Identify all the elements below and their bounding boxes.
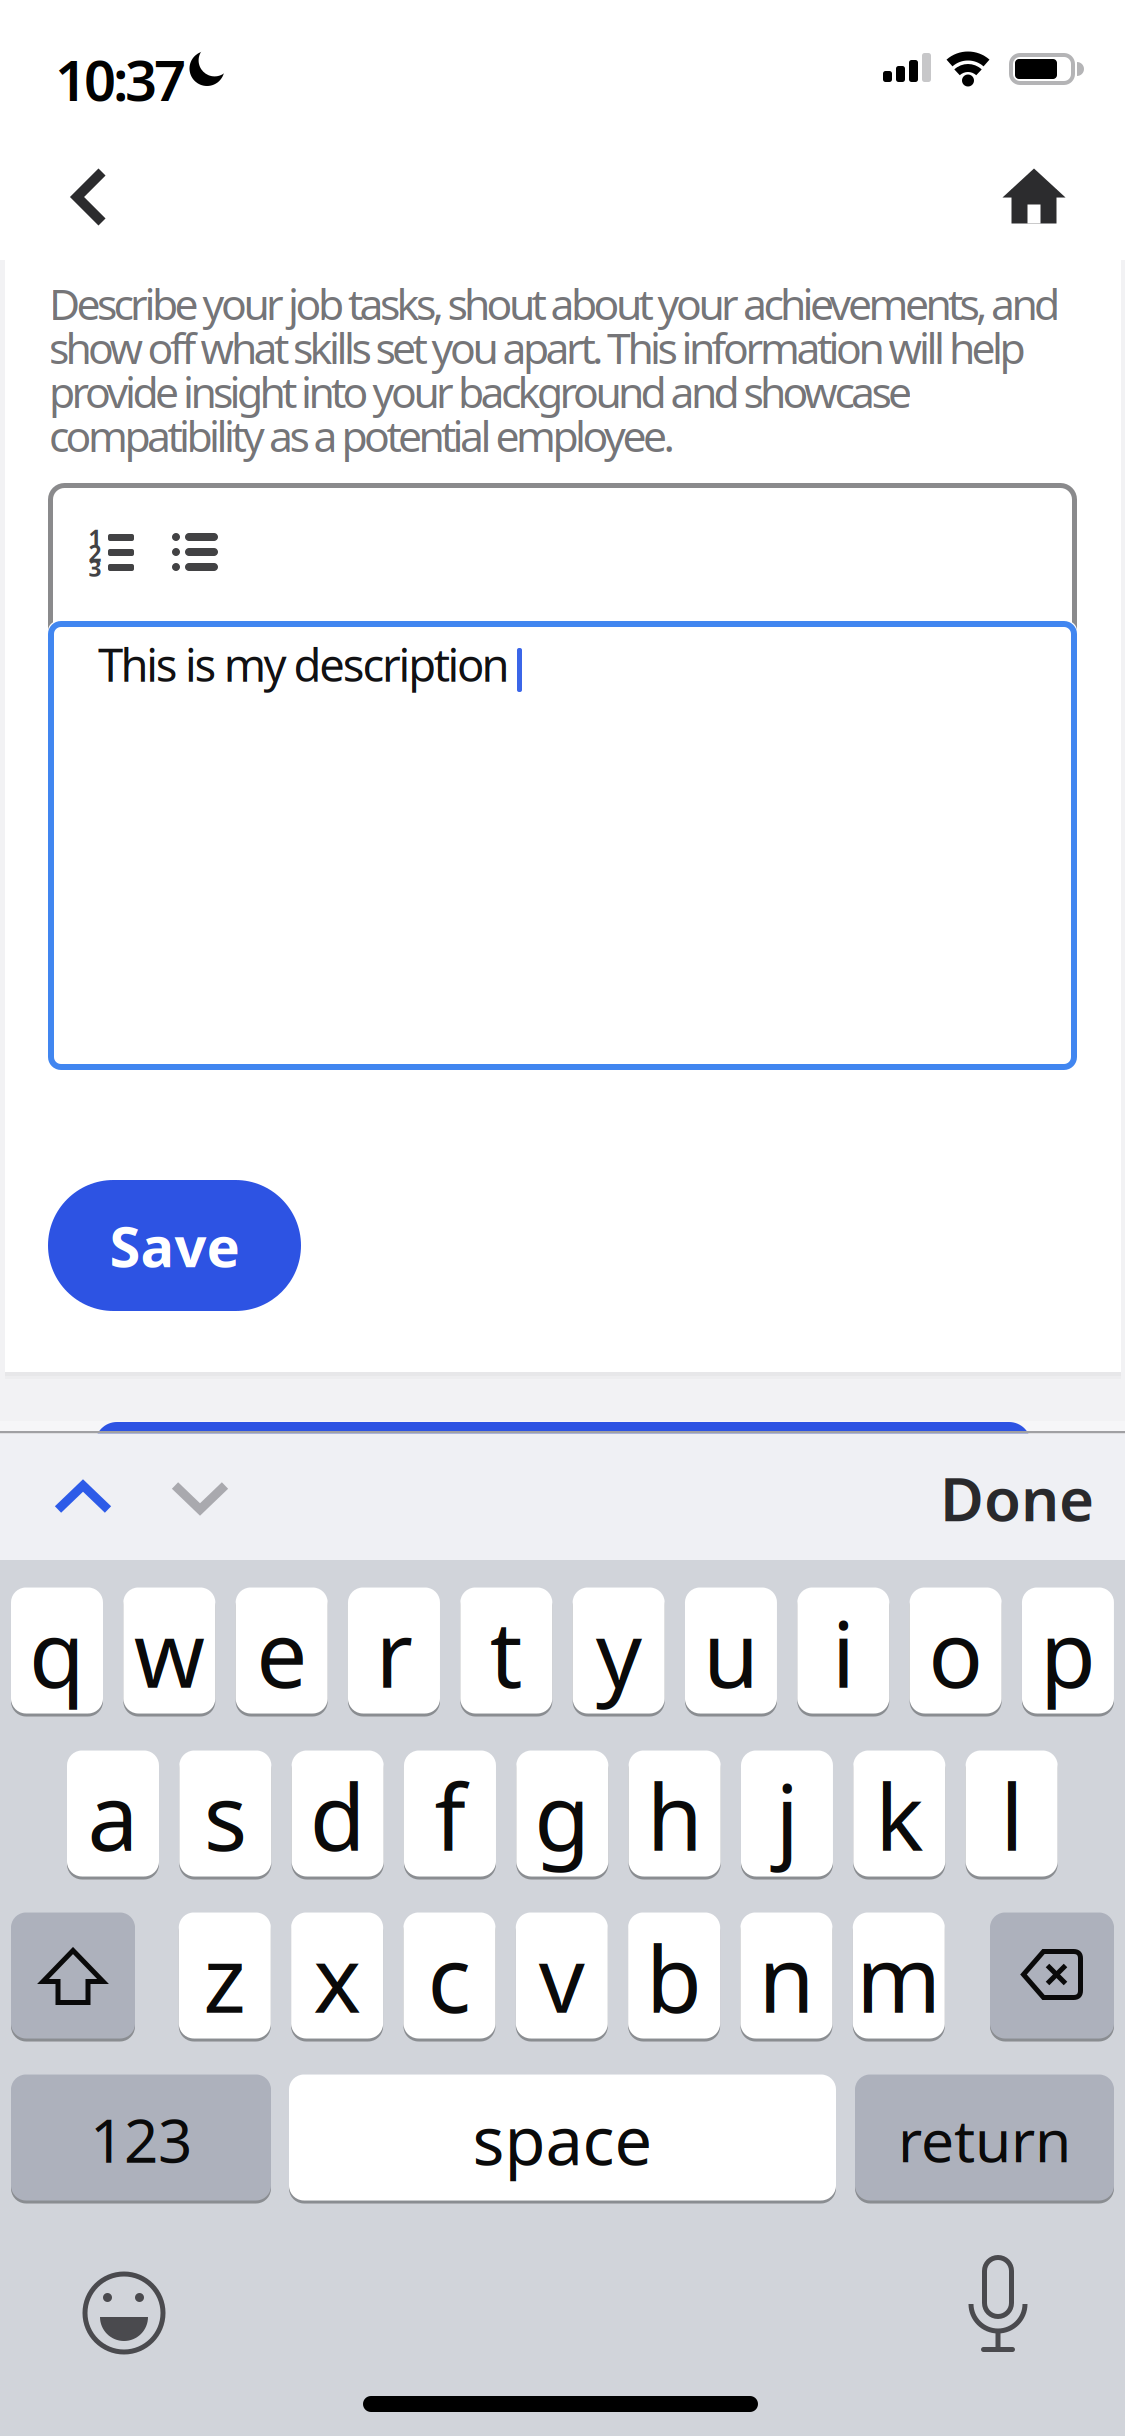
button[interactable]: return — [855, 2073, 1114, 2202]
button[interactable]: u — [685, 1586, 777, 1715]
button[interactable]: t — [460, 1586, 552, 1715]
button[interactable]: q — [11, 1586, 103, 1715]
button[interactable]: f — [404, 1749, 496, 1878]
button[interactable]: r — [348, 1586, 440, 1715]
staticText: o — [928, 1592, 983, 1713]
button[interactable]: space — [289, 2073, 836, 2202]
staticText: s — [204, 1755, 247, 1876]
staticText: m — [856, 1917, 941, 2038]
button[interactable]: 123 — [11, 2073, 271, 2202]
staticText: 3 — [88, 553, 101, 583]
button[interactable]: v — [516, 1911, 608, 2040]
staticText: w — [134, 1592, 205, 1713]
staticText: r — [375, 1592, 412, 1713]
button[interactable]: e — [236, 1586, 328, 1715]
staticText: t — [490, 1592, 523, 1713]
staticText: v — [539, 1917, 585, 2038]
button[interactable]: Done — [937, 1448, 1097, 1548]
button[interactable]: j — [741, 1749, 833, 1878]
button[interactable]: l — [966, 1749, 1058, 1878]
staticText: n — [758, 1917, 814, 2038]
staticText: show off what skills set you apart. This… — [49, 319, 1025, 376]
staticText: z — [203, 1917, 246, 2038]
staticText: space — [472, 2095, 652, 2184]
staticText: u — [703, 1592, 759, 1713]
button[interactable]: z — [179, 1911, 271, 2040]
staticText: j — [775, 1755, 798, 1876]
button[interactable]: w — [123, 1586, 215, 1715]
button[interactable]: n — [740, 1911, 832, 2040]
button[interactable]: Home — [1002, 168, 1066, 224]
staticText: 123 — [90, 2100, 192, 2179]
staticText: k — [875, 1755, 923, 1876]
button[interactable]: h — [629, 1749, 721, 1878]
button[interactable]: x — [291, 1911, 383, 2040]
button[interactable]: o — [910, 1586, 1002, 1715]
staticText: compatibility as a potential employee. — [49, 407, 674, 464]
button[interactable]: a — [67, 1749, 159, 1878]
button[interactable]: s — [179, 1749, 271, 1878]
button[interactable]: m — [853, 1911, 945, 2040]
staticText: y — [596, 1592, 642, 1713]
button[interactable]: Next field — [171, 1480, 229, 1514]
staticText: a — [87, 1755, 138, 1876]
staticText: 10:37 — [55, 42, 186, 116]
staticText: Done — [940, 1458, 1094, 1538]
staticText: e — [256, 1592, 307, 1713]
button[interactable]: p — [1022, 1586, 1114, 1715]
staticText: q — [29, 1592, 85, 1713]
button[interactable]: k — [853, 1749, 945, 1878]
staticText: b — [646, 1917, 702, 2038]
staticText: c — [427, 1917, 471, 2038]
button[interactable]: g — [516, 1749, 608, 1878]
button[interactable]: Delete — [990, 1911, 1114, 2040]
button[interactable]: Numbered list — [88, 529, 136, 575]
staticText: f — [434, 1755, 465, 1876]
staticText: i — [832, 1592, 855, 1713]
button[interactable]: Save — [95, 1422, 1031, 1466]
button[interactable]: Bulleted list — [172, 532, 218, 572]
staticText: Describe your job tasks, shout about you… — [49, 275, 1060, 332]
button[interactable]: Previous field — [54, 1480, 112, 1514]
staticText: provide insight into your background and… — [49, 363, 912, 420]
button[interactable]: Dictation — [966, 2253, 1030, 2359]
staticText: d — [310, 1755, 366, 1876]
staticText: Save — [109, 1208, 239, 1283]
staticText: x — [313, 1917, 361, 2038]
button[interactable]: c — [403, 1911, 495, 2040]
button[interactable]: Shift — [11, 1911, 135, 2040]
staticText: h — [647, 1755, 703, 1876]
staticText: 2 — [88, 538, 101, 568]
staticText: l — [1000, 1755, 1023, 1876]
button[interactable]: d — [292, 1749, 384, 1878]
button[interactable]: Back — [44, 167, 134, 227]
staticText: g — [534, 1755, 590, 1876]
button[interactable]: Save — [48, 1180, 301, 1311]
button[interactable]: Emoji — [82, 2271, 166, 2355]
staticText: return — [898, 2100, 1071, 2178]
button[interactable]: b — [628, 1911, 720, 2040]
button[interactable]: i — [797, 1586, 889, 1715]
staticText: p — [1040, 1592, 1096, 1713]
staticText: This is my description — [98, 634, 510, 694]
button[interactable]: y — [573, 1586, 665, 1715]
staticText: 1 — [88, 523, 101, 553]
